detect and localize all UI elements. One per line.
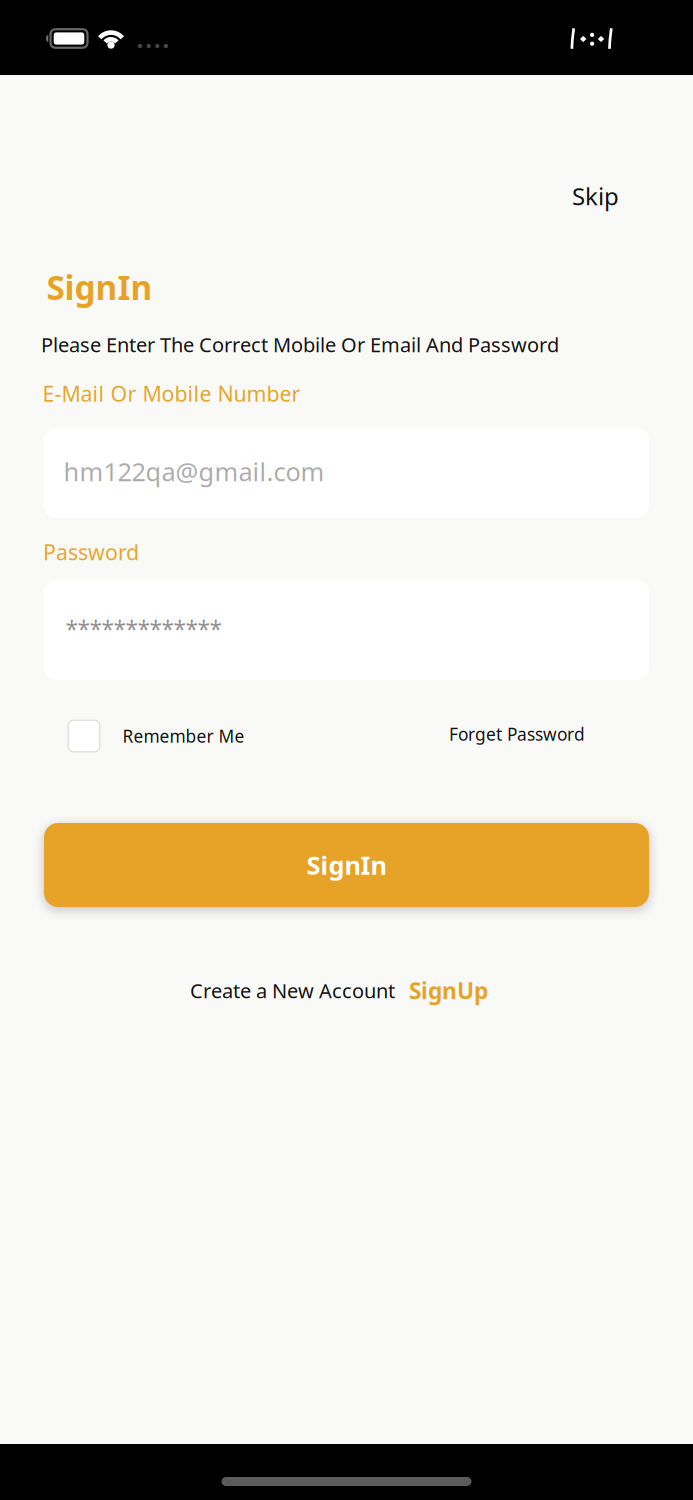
- staticText: Password: [43, 538, 139, 566]
- staticText: SignIn: [306, 848, 386, 882]
- staticText: Skip: [572, 180, 619, 212]
- button[interactable]: SignUp: [409, 975, 488, 1005]
- staticText: Remember Me: [122, 724, 244, 747]
- button[interactable]: Skip: [572, 180, 619, 212]
- staticText: hm122qa@gmail.com: [63, 455, 324, 488]
- button[interactable]: SignIn: [44, 823, 649, 907]
- button[interactable]: Forget Password: [449, 722, 585, 745]
- staticText: SignUp: [409, 975, 488, 1005]
- staticText: Forget Password: [449, 722, 585, 745]
- staticText: *************: [65, 614, 221, 644]
- button[interactable]: Remember Me: [67, 719, 244, 752]
- staticText: SignIn: [46, 265, 152, 309]
- staticText: Create a New Account: [190, 977, 395, 1004]
- staticText: Please Enter The Correct Mobile Or Email…: [41, 331, 559, 358]
- staticText: E-Mail Or Mobile Number: [42, 379, 300, 408]
